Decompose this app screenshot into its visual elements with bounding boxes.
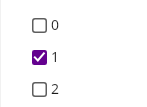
button[interactable]: 2 xyxy=(0,73,147,105)
button[interactable]: 0 xyxy=(0,9,147,41)
staticText: 0 xyxy=(51,15,60,34)
staticText: 1 xyxy=(51,47,60,66)
staticText: 2 xyxy=(51,79,60,98)
button[interactable]: 1 xyxy=(0,41,147,73)
